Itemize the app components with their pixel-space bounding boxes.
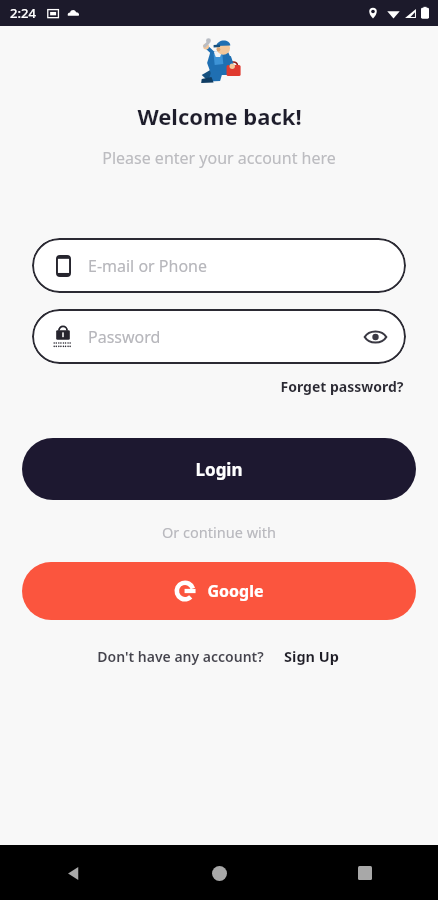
button[interactable]: Password (32, 309, 406, 364)
button[interactable]: E-mail or Phone (32, 238, 406, 293)
button[interactable]: Show password (362, 324, 388, 350)
staticText: Don't have any account? (97, 647, 264, 666)
staticText: Welcome back! (137, 101, 302, 131)
staticText: Forget password? (280, 377, 404, 396)
button[interactable]: Home (197, 851, 241, 895)
staticText: Password (88, 326, 161, 348)
staticText: E-mail or Phone (88, 255, 208, 277)
staticText: Login (195, 458, 243, 481)
button[interactable]: Google (22, 562, 416, 620)
staticText: Google (207, 580, 264, 602)
staticText: Sign Up (284, 646, 339, 666)
button[interactable]: Sign Up (282, 643, 341, 669)
button[interactable]: Recents (343, 851, 387, 895)
staticText: 2:24 (10, 4, 36, 22)
staticText: Or continue with (162, 522, 276, 542)
staticText: Please enter your account here (102, 147, 336, 169)
button[interactable]: Forget password? (278, 374, 406, 399)
button[interactable]: Login (22, 438, 416, 500)
button[interactable]: Back (51, 851, 95, 895)
